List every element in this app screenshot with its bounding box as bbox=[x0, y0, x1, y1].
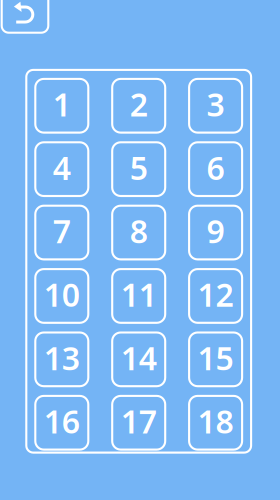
staticText: 15 bbox=[198, 336, 234, 379]
button[interactable]: 6 bbox=[189, 142, 242, 196]
button[interactable]: 11 bbox=[112, 269, 165, 323]
staticText: 17 bbox=[121, 400, 157, 442]
button[interactable]: 15 bbox=[189, 332, 242, 386]
button[interactable]: 14 bbox=[112, 332, 165, 386]
staticText: 4 bbox=[53, 146, 71, 189]
staticText: 14 bbox=[121, 336, 157, 379]
button[interactable]: 10 bbox=[35, 269, 88, 323]
button[interactable]: 9 bbox=[189, 206, 242, 259]
staticText: 6 bbox=[207, 146, 225, 189]
staticText: 7 bbox=[53, 210, 71, 252]
button[interactable]: 4 bbox=[35, 142, 88, 196]
staticText: 5 bbox=[130, 146, 148, 189]
button[interactable]: 16 bbox=[35, 396, 88, 450]
button[interactable]: 5 bbox=[112, 142, 165, 196]
staticText: 18 bbox=[198, 400, 234, 442]
staticText: 12 bbox=[198, 273, 234, 316]
button[interactable]: 12 bbox=[189, 269, 242, 323]
staticText: 16 bbox=[44, 400, 80, 442]
staticText: 8 bbox=[130, 210, 148, 252]
staticText: 9 bbox=[207, 210, 225, 252]
button[interactable]: 17 bbox=[112, 396, 165, 450]
button[interactable]: 8 bbox=[112, 206, 165, 259]
button[interactable]: 3 bbox=[189, 79, 242, 133]
button[interactable]: Back bbox=[2, 0, 48, 33]
button[interactable]: 7 bbox=[35, 206, 88, 259]
button[interactable]: 18 bbox=[189, 396, 242, 450]
staticText: 2 bbox=[130, 83, 148, 125]
button[interactable]: 13 bbox=[35, 332, 88, 386]
staticText: 13 bbox=[44, 336, 80, 379]
button[interactable]: 1 bbox=[35, 79, 88, 133]
button[interactable]: 2 bbox=[112, 79, 165, 133]
staticText: 11 bbox=[121, 273, 157, 316]
staticText: 3 bbox=[207, 83, 225, 125]
staticText: 1 bbox=[53, 83, 71, 125]
staticText: 10 bbox=[44, 273, 80, 316]
